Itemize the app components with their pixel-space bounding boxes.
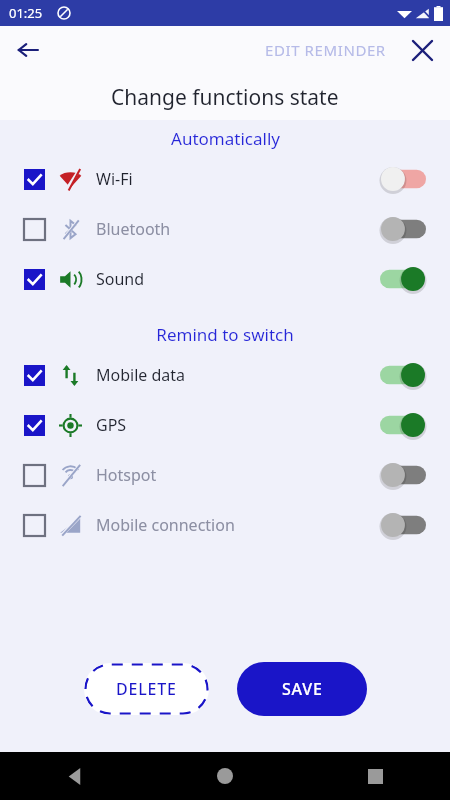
button[interactable]: Bluetooth switch [380,216,426,242]
staticText: Mobile connection [96,514,235,536]
staticText: SAVE [282,678,323,700]
button[interactable]: Toggle [0,154,450,204]
button[interactable]: Toggle [0,450,450,500]
button[interactable]: Toggle [23,464,45,486]
button[interactable]: Wi-Fi switch [380,166,426,192]
button[interactable]: Toggle [23,414,45,436]
button[interactable]: Toggle [0,350,450,400]
button[interactable]: SAVE [237,662,367,716]
button[interactable]: Toggle [23,218,45,240]
staticText: Mobile data [96,364,186,386]
staticText: Wi-Fi [96,168,133,190]
staticText: GPS [96,414,127,436]
button[interactable]: Toggle [0,500,450,550]
button[interactable]: Toggle [23,268,45,290]
button[interactable]: Back [0,752,150,800]
staticText: Remind to switch [156,323,294,346]
staticText: Change functions state [111,83,339,112]
staticText: EDIT REMINDER [265,40,386,60]
button[interactable]: Toggle [23,168,45,190]
staticText: Automatically [171,127,280,150]
staticText: DELETE [116,678,177,700]
button[interactable]: Toggle [23,364,45,386]
staticText: 01:25 [9,4,43,22]
button[interactable]: Toggle [0,204,450,254]
button[interactable]: DELETE [84,663,209,715]
button[interactable]: Back [8,30,48,70]
button[interactable]: Mobile connection switch [380,512,426,538]
button[interactable]: Recent apps [300,752,450,800]
button[interactable]: Home [150,752,300,800]
staticText: Sound [96,268,145,290]
button[interactable]: GPS switch [380,412,426,438]
staticText: Bluetooth [96,218,171,240]
button[interactable]: Hotspot switch [380,462,426,488]
button[interactable]: Sound switch [380,266,426,292]
button[interactable]: Close [402,30,442,70]
staticText: Hotspot [96,464,157,486]
button[interactable]: Mobile data switch [380,362,426,388]
button[interactable]: Toggle [23,514,45,536]
button[interactable]: Toggle [0,400,450,450]
button[interactable]: Toggle [0,254,450,304]
